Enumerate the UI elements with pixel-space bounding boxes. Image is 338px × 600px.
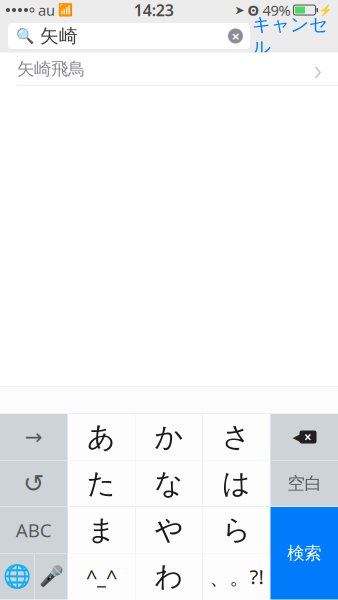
button[interactable]: Search [270, 507, 338, 599]
staticText: は [222, 466, 251, 501]
button[interactable]: Delete [270, 414, 338, 460]
button[interactable]: た [68, 460, 135, 506]
staticText: ↺ [23, 469, 44, 498]
button[interactable]: Clear text [228, 24, 250, 47]
staticText: な [154, 466, 183, 501]
button[interactable]: わ [135, 553, 202, 599]
staticText: 📶 [58, 3, 73, 17]
staticText: わ [154, 559, 183, 594]
button[interactable]: Next candidate [0, 414, 67, 460]
staticText: ◀ [292, 430, 301, 444]
staticText: au [38, 0, 55, 20]
staticText: ABC [16, 518, 52, 542]
staticText: 🔍 [16, 28, 34, 44]
staticText: × [304, 428, 312, 446]
staticText: × [231, 26, 239, 46]
staticText: 🌐 [3, 564, 31, 589]
button[interactable]: キャンセル [250, 20, 330, 52]
button[interactable]: さ [203, 414, 270, 460]
button[interactable]: Next keyboard [0, 553, 34, 599]
staticText: ら [222, 513, 251, 547]
staticText: ^_^ [86, 563, 117, 590]
staticText: 検索 [287, 543, 321, 564]
staticText: あ [87, 420, 116, 454]
staticText: ➤ [234, 3, 244, 17]
staticText: ʘ [247, 0, 259, 20]
button[interactable]: 矢崎飛鳥 [0, 52, 338, 86]
staticText: › [314, 49, 322, 88]
staticText: 、。?! [209, 563, 263, 590]
staticText: 矢崎 [40, 24, 78, 47]
staticText: 矢崎飛鳥 [17, 58, 85, 80]
staticText: 14:23 [134, 0, 174, 21]
button[interactable]: Undo [0, 460, 67, 506]
staticText: 空白 [287, 473, 321, 494]
staticText: 🎤 [38, 565, 63, 588]
button[interactable]: Punctuation [203, 553, 270, 599]
button[interactable]: ABC [0, 507, 68, 553]
staticText: や [155, 513, 184, 547]
button[interactable]: は [203, 460, 270, 506]
button[interactable]: あ [68, 414, 135, 460]
staticText: か [154, 420, 183, 454]
staticText: キャンセル [252, 13, 328, 59]
button[interactable]: な [135, 460, 202, 506]
staticText: ま [87, 513, 116, 547]
staticText: 49% [262, 0, 290, 20]
button[interactable]: Space [270, 460, 338, 506]
button[interactable]: ら [203, 507, 270, 553]
button[interactable]: Emoticons [68, 553, 135, 599]
staticText: → [24, 425, 42, 449]
button[interactable]: ま [68, 507, 135, 553]
staticText: ⚡ [319, 4, 332, 16]
button[interactable]: や [136, 507, 203, 553]
staticText: た [87, 466, 116, 501]
staticText: さ [222, 420, 251, 454]
button[interactable]: Dictation [34, 553, 67, 599]
button[interactable]: か [135, 414, 202, 460]
